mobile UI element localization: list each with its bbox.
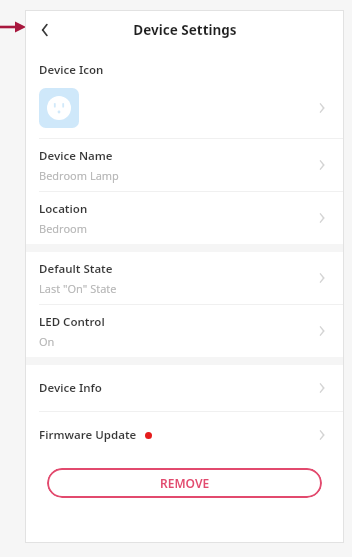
staticText: Device Name [39,148,113,164]
staticText: LED Control [39,314,105,330]
staticText: Device Info [39,380,102,396]
staticText: Device Settings [133,21,237,39]
button[interactable]: Location [25,192,344,244]
staticText: Location [39,201,88,217]
staticText: Bedroom Lamp [39,168,119,183]
staticText: Device Icon [39,62,104,78]
button[interactable]: Device Name [25,139,344,191]
button[interactable]: Device Info [25,365,344,411]
staticText: Last "On" State [39,281,117,296]
button[interactable]: LED Control [25,305,344,357]
staticText: Default State [39,261,113,277]
button[interactable]: Default State [25,252,344,304]
button[interactable]: Back [25,10,65,50]
button[interactable]: REMOVE [47,468,322,498]
button[interactable]: Device Icon [25,50,344,138]
staticText: Bedroom [39,221,88,236]
button[interactable]: Firmware Update [25,412,344,458]
staticText: Firmware Update [39,427,137,443]
staticText: On [39,334,55,349]
staticText: REMOVE [160,475,210,491]
